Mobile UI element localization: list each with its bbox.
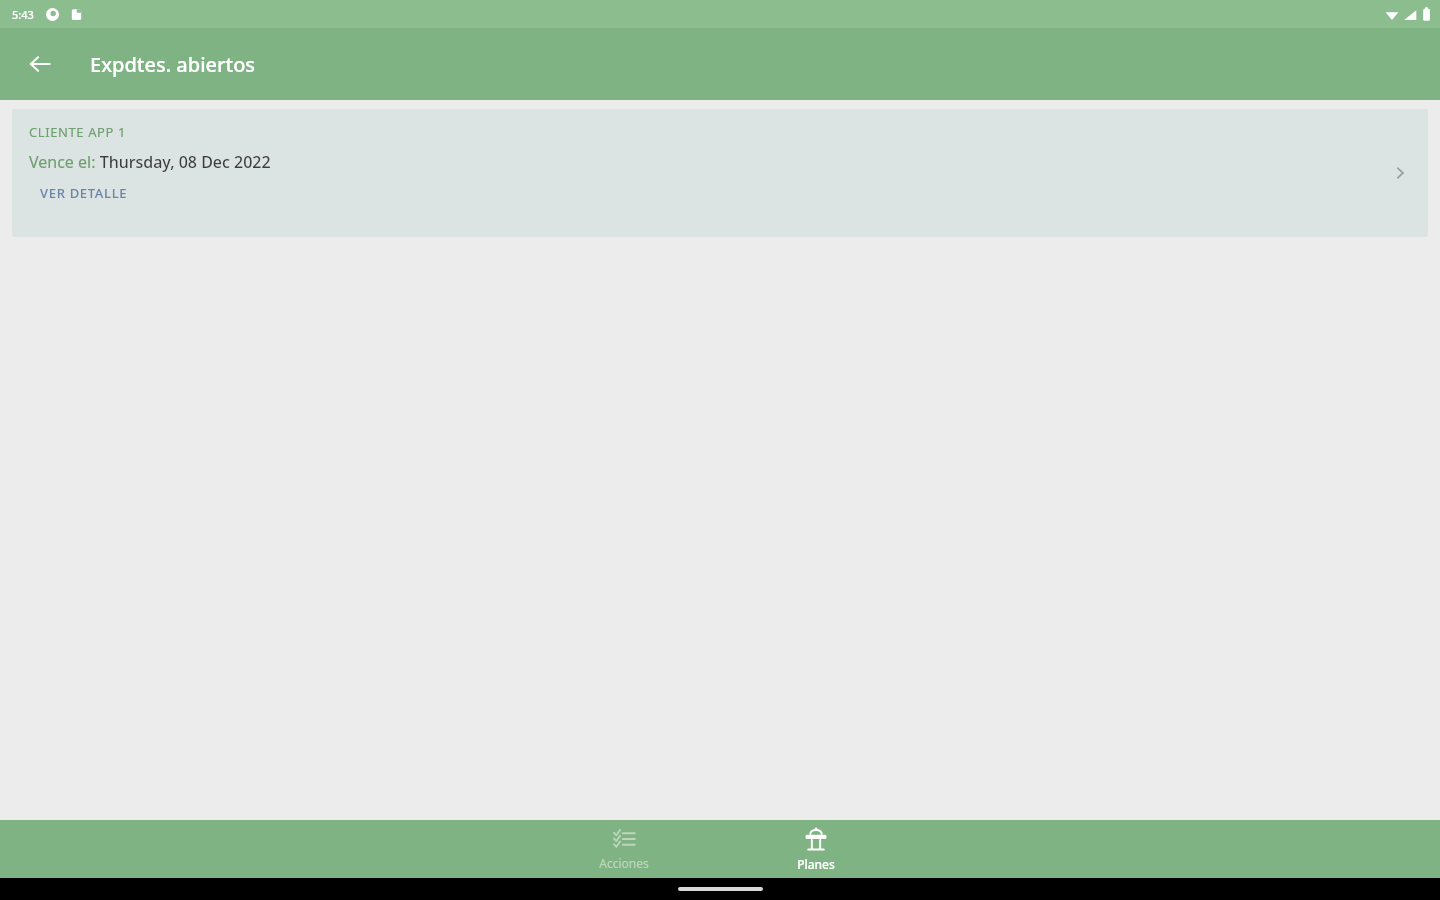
staticText: VER DETALLE — [40, 184, 128, 202]
button[interactable]: Back — [16, 40, 64, 88]
button[interactable]: CLIENTE APP 1 — [12, 109, 1428, 237]
staticText: CLIENTE APP 1 — [29, 123, 127, 141]
button[interactable]: Acciones — [574, 823, 674, 875]
staticText: Expdtes. abiertos — [90, 51, 256, 78]
button[interactable]: Planes — [766, 822, 866, 876]
staticText: Vence el: Thursday, 08 Dec 2022 — [29, 151, 271, 173]
button[interactable]: Open detail — [1380, 153, 1420, 193]
staticText: Acciones — [599, 855, 649, 871]
staticText: Planes — [797, 856, 835, 872]
staticText: 5:43 — [12, 7, 34, 22]
button[interactable]: VER DETALLE — [38, 183, 130, 203]
